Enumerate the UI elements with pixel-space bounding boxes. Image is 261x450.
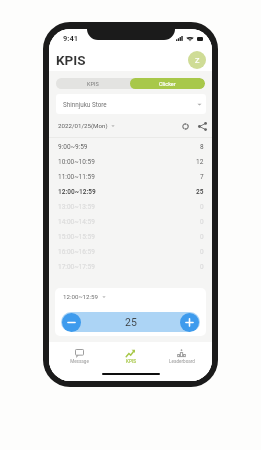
staticText: Shinnjuku Store: [63, 101, 107, 108]
staticText: 16:00~16:59: [58, 248, 95, 256]
button[interactable]: Leaderboard: [156, 342, 207, 370]
button[interactable]: Increment: [180, 313, 199, 332]
staticText: 0: [200, 248, 204, 256]
button[interactable]: KPIS: [105, 342, 156, 370]
staticText: 12:00~12:59: [63, 293, 99, 300]
staticText: 25: [125, 316, 137, 328]
button[interactable]: 17:00~17:59: [49, 259, 212, 274]
button[interactable]: Refresh: [178, 119, 192, 133]
staticText: 12:00~12:59: [58, 188, 96, 196]
staticText: Leaderboard: [169, 359, 195, 364]
staticText: 7: [200, 173, 204, 181]
staticText: 0: [200, 203, 204, 211]
staticText: 13:00~13:59: [58, 203, 95, 211]
button[interactable]: 16:00~16:59: [49, 244, 212, 259]
staticText: Message: [70, 359, 89, 364]
button[interactable]: 10:00~10:59: [49, 154, 212, 169]
button[interactable]: Shinnjuku Store: [56, 94, 206, 114]
button[interactable]: Decrement: [62, 313, 81, 332]
staticText: 9:00~9:59: [58, 143, 88, 151]
staticText: 0: [200, 218, 204, 226]
button[interactable]: Share: [195, 119, 209, 133]
button[interactable]: 15:00~15:59: [49, 229, 212, 244]
button[interactable]: 14:00~14:59: [49, 214, 212, 229]
staticText: KPIS: [87, 81, 99, 87]
staticText: 2022/01/25(Mon): [58, 122, 108, 129]
button[interactable]: 9:00~9:59: [49, 139, 212, 154]
staticText: KPIS: [56, 52, 86, 68]
staticText: Clicker: [159, 81, 176, 87]
button[interactable]: KPIS: [56, 78, 130, 89]
button[interactable]: 2022/01/25(Mon): [58, 119, 115, 132]
staticText: 15:00~15:59: [58, 233, 95, 241]
staticText: 0: [200, 233, 204, 241]
button[interactable]: Message: [54, 342, 105, 370]
staticText: 25: [196, 188, 204, 196]
staticText: 9:41: [63, 34, 79, 43]
staticText: Z: [195, 56, 200, 65]
staticText: 12: [196, 158, 204, 166]
button[interactable]: 11:00~11:59: [49, 169, 212, 184]
staticText: 11:00~11:59: [58, 173, 95, 181]
button[interactable]: 13:00~13:59: [49, 199, 212, 214]
button[interactable]: Profile: [188, 51, 206, 69]
button[interactable]: 12:00~12:59: [63, 293, 106, 300]
staticText: 17:00~17:59: [58, 263, 95, 271]
staticText: KPIS: [126, 359, 136, 364]
button[interactable]: Clicker: [130, 78, 205, 89]
button[interactable]: 12:00~12:59: [49, 184, 212, 199]
staticText: 8: [200, 143, 204, 151]
staticText: 0: [200, 263, 204, 271]
staticText: 10:00~10:59: [58, 158, 95, 166]
staticText: 14:00~14:59: [58, 218, 95, 226]
